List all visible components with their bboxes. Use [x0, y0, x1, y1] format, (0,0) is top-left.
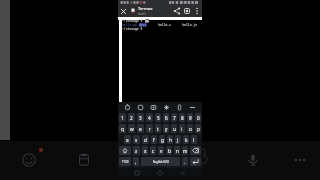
button[interactable]: o	[187, 124, 193, 133]
staticText: t	[157, 126, 159, 132]
staticText: ls	[145, 19, 149, 23]
staticText: 0	[197, 115, 200, 121]
button[interactable]: English (US)	[141, 157, 180, 166]
button[interactable]: y	[163, 124, 169, 133]
button[interactable]: h	[167, 135, 173, 144]
staticText: j	[177, 137, 179, 143]
staticText: 3	[139, 115, 142, 121]
button[interactable]: Voice input	[245, 152, 261, 168]
button[interactable]: s	[133, 135, 140, 144]
staticText: ,	[135, 159, 137, 165]
button[interactable]: Home	[156, 169, 164, 177]
button[interactable]: 6	[163, 113, 169, 122]
button[interactable]: Emoji	[21, 152, 37, 168]
button[interactable]: .	[182, 157, 188, 166]
staticText: e	[139, 126, 142, 132]
staticText: hello.c hello.js	[147, 23, 198, 27]
button[interactable]: u	[171, 124, 177, 133]
staticText: ~/storage $	[122, 27, 145, 31]
button[interactable]: Key	[119, 146, 131, 155]
button[interactable]: Close	[118, 6, 129, 17]
staticText: 5	[157, 115, 160, 121]
button[interactable]: More options	[192, 6, 202, 16]
button[interactable]: Keyboard tool 4	[176, 104, 183, 111]
staticText: m	[183, 148, 188, 154]
staticText: .	[184, 159, 186, 165]
button[interactable]: 7	[171, 113, 177, 122]
button[interactable]: i	[179, 124, 185, 133]
button[interactable]: ,	[133, 157, 139, 166]
button[interactable]: 9	[187, 113, 193, 122]
staticText: 1	[121, 115, 124, 121]
button[interactable]: q	[119, 124, 126, 133]
button[interactable]: l	[191, 135, 197, 144]
button[interactable]: Keyboard tool 2	[150, 104, 157, 111]
button[interactable]: Back	[179, 169, 187, 177]
button[interactable]: a	[124, 135, 131, 144]
button[interactable]: Keyboard tool 5	[189, 104, 196, 111]
button[interactable]: 5	[155, 113, 161, 122]
button[interactable]: c	[150, 146, 156, 155]
button[interactable]: Recents	[133, 169, 141, 177]
staticText: Termux	[138, 6, 153, 11]
button[interactable]: w	[128, 124, 135, 133]
button[interactable]: 2	[128, 113, 135, 122]
button[interactable]: Keyboard tool 1	[137, 104, 144, 111]
button[interactable]: f	[151, 135, 157, 144]
staticText: b	[168, 148, 171, 154]
button[interactable]: More options	[292, 152, 308, 168]
button[interactable]: j	[175, 135, 181, 144]
staticText: ?123	[122, 160, 129, 164]
staticText: 8	[181, 115, 184, 121]
staticText: hello.py	[122, 23, 139, 27]
staticText: u	[173, 126, 176, 132]
button[interactable]: Keyboard tool 3	[163, 104, 170, 111]
button[interactable]: e	[137, 124, 144, 133]
staticText: 9	[189, 115, 192, 121]
staticText: h	[169, 137, 172, 143]
staticText: w	[130, 126, 134, 132]
button[interactable]: 0	[195, 113, 201, 122]
button[interactable]: Share	[172, 6, 182, 16]
button[interactable]: b	[166, 146, 172, 155]
button[interactable]: Key	[190, 146, 201, 155]
staticText: English (US)	[153, 160, 169, 164]
button[interactable]: k	[183, 135, 189, 144]
staticText: v	[160, 148, 163, 154]
button[interactable]: m	[182, 146, 188, 155]
staticText: docs	[139, 23, 147, 27]
button[interactable]: ?123	[119, 157, 131, 166]
staticText: p	[197, 126, 200, 132]
button[interactable]: d	[142, 135, 149, 144]
button[interactable]: n	[174, 146, 180, 155]
button[interactable]: r	[146, 124, 153, 133]
staticText: d	[144, 137, 147, 143]
button[interactable]: 1	[119, 113, 126, 122]
button[interactable]: Keyboard tool 0	[124, 104, 131, 111]
staticText: r	[149, 126, 151, 132]
button[interactable]: 3	[137, 113, 144, 122]
staticText: n	[176, 148, 179, 154]
staticText: a	[126, 137, 129, 143]
staticText: bash	[138, 11, 146, 16]
button[interactable]: Key	[190, 157, 201, 166]
button[interactable]: Clipboard	[76, 152, 92, 168]
button[interactable]: 8	[179, 113, 185, 122]
button[interactable]: z	[133, 146, 140, 155]
staticText: q	[121, 126, 124, 132]
button[interactable]: t	[155, 124, 161, 133]
button[interactable]: x	[142, 146, 148, 155]
button[interactable]: New session	[182, 6, 192, 16]
staticText: i	[181, 126, 183, 132]
staticText: ~/storage $	[122, 19, 145, 23]
staticText: 2	[130, 115, 133, 121]
staticText: 7	[173, 115, 176, 121]
button[interactable]: p	[195, 124, 201, 133]
staticText: g	[161, 137, 164, 143]
staticText: o	[189, 126, 192, 132]
staticText: l	[193, 137, 195, 143]
button[interactable]: g	[159, 135, 165, 144]
button[interactable]: v	[158, 146, 164, 155]
staticText: 6	[165, 115, 168, 121]
button[interactable]: 4	[146, 113, 153, 122]
